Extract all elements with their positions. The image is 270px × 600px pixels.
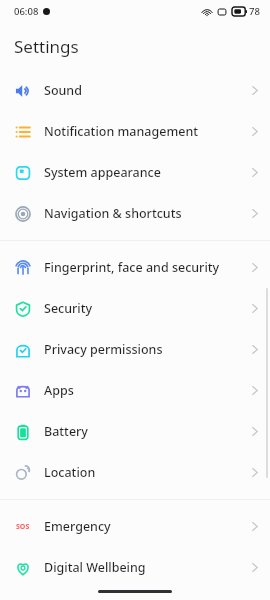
button[interactable]: Security: [0, 288, 270, 329]
button[interactable]: Location: [0, 452, 270, 493]
staticText: Security: [44, 300, 93, 317]
staticText: Privacy permissions: [44, 341, 163, 358]
button[interactable]: Navigation & shortcuts: [0, 193, 270, 234]
staticText: Settings: [14, 35, 79, 58]
staticText: Notification management: [44, 123, 199, 140]
button[interactable]: Privacy permissions: [0, 329, 270, 370]
button[interactable]: Sound: [0, 70, 270, 111]
staticText: Navigation & shortcuts: [44, 205, 182, 222]
staticText: SOS: [16, 522, 30, 532]
button[interactable]: Apps: [0, 370, 270, 411]
staticText: Apps: [44, 382, 74, 399]
button[interactable]: Fingerprint, face and security: [0, 247, 270, 288]
button[interactable]: Digital Wellbeing: [0, 547, 270, 588]
button[interactable]: System appearance: [0, 152, 270, 193]
staticText: System appearance: [44, 164, 161, 181]
staticText: Battery: [44, 423, 88, 440]
staticText: 78: [249, 5, 260, 18]
staticText: Digital Wellbeing: [44, 559, 146, 576]
staticText: Location: [44, 464, 96, 481]
button[interactable]: SOS: [0, 506, 270, 547]
staticText: 06:08: [14, 5, 39, 18]
staticText: Sound: [44, 82, 82, 99]
button[interactable]: Battery: [0, 411, 270, 452]
staticText: Emergency: [44, 518, 111, 535]
button[interactable]: Notification management: [0, 111, 270, 152]
staticText: Fingerprint, face and security: [44, 259, 220, 276]
